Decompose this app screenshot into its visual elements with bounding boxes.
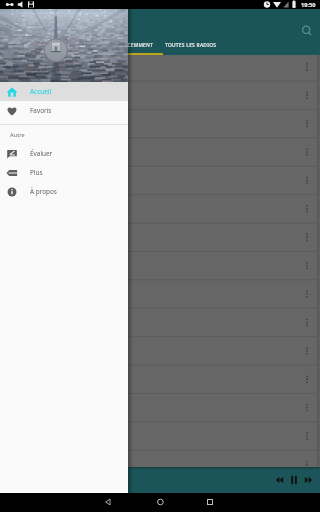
button[interactable]: Rechercher [298, 22, 316, 40]
staticText: 19:50 [301, 1, 316, 9]
staticText: Plus [30, 168, 43, 177]
button[interactable] [0, 261, 320, 289]
button[interactable] [0, 345, 320, 373]
button[interactable]: Favoris [0, 101, 128, 120]
button[interactable]: TOUTES LES RADIOS [163, 38, 219, 53]
button[interactable]: Accueil [152, 495, 168, 511]
button[interactable] [0, 233, 320, 261]
button[interactable] [0, 429, 320, 457]
button[interactable] [0, 93, 320, 121]
button[interactable]: À propos [0, 182, 128, 201]
button[interactable] [0, 317, 320, 345]
button[interactable] [0, 65, 320, 93]
button[interactable] [0, 37, 320, 65]
button[interactable] [0, 121, 320, 149]
staticText: À propos [30, 187, 57, 196]
button[interactable] [0, 177, 320, 205]
button[interactable]: Suivant [302, 473, 316, 487]
staticText: Accueil [30, 87, 52, 96]
staticText: Évaluer [30, 149, 53, 158]
staticText: RÉCEMMENT [121, 42, 154, 49]
button[interactable] [0, 289, 320, 317]
button[interactable] [0, 205, 320, 233]
button[interactable] [0, 9, 320, 37]
button[interactable] [0, 373, 320, 401]
button[interactable]: Pause [286, 472, 302, 488]
staticText: Autre [10, 131, 25, 139]
button[interactable]: Précédent [272, 473, 286, 487]
button[interactable]: Évaluer [0, 144, 128, 163]
button[interactable]: Applications récentes [202, 495, 218, 511]
staticText: Favoris [30, 106, 52, 115]
button[interactable]: Retour [100, 495, 116, 511]
button[interactable] [0, 149, 320, 177]
button[interactable] [0, 401, 320, 429]
button[interactable]: Plus [0, 163, 128, 182]
staticText: TOUTES LES RADIOS [165, 42, 217, 49]
button[interactable]: Accueil [0, 82, 128, 101]
button[interactable]: RÉCEMMENT [111, 38, 163, 53]
